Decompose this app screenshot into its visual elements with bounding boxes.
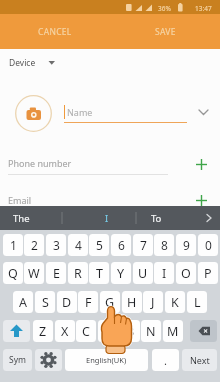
button[interactable]: 7 [133,234,153,256]
staticText: 2 [31,237,38,253]
button[interactable]: M [163,320,183,342]
button[interactable]: . [152,349,179,371]
staticText: T [96,265,103,282]
button[interactable]: A [13,291,33,313]
button[interactable] [60,98,212,128]
staticText: Email [8,194,32,206]
button[interactable]: U [133,262,153,284]
button[interactable]: 8 [154,234,174,256]
button[interactable]: D [57,291,77,313]
staticText: S [42,294,49,311]
button[interactable] [195,194,208,207]
staticText: English(UK) [86,355,127,365]
button[interactable]: P [198,262,218,284]
staticText: A [19,294,27,311]
staticText: 4 [75,237,82,253]
button[interactable]: 5 [89,234,109,256]
staticText: Y [117,265,125,282]
button[interactable] [190,320,217,342]
staticText: Name [67,106,93,118]
button[interactable] [0,51,220,75]
staticText: 36% [158,4,171,13]
staticText: 1 [10,237,17,253]
button[interactable] [3,320,30,342]
staticText: Z [39,323,47,340]
button[interactable]: Q [3,262,23,284]
staticText: CANCEL [38,26,72,38]
button[interactable]: V [98,320,118,342]
button[interactable]: B [120,320,140,342]
button[interactable] [0,152,190,178]
staticText: The [13,212,30,225]
staticText: H [127,294,137,311]
staticText: Phone number [8,157,72,169]
button[interactable] [136,206,200,230]
button[interactable]: Z [33,320,53,342]
staticText: Next [190,354,210,366]
button[interactable]: E [46,262,66,284]
button[interactable]: O [176,262,196,284]
staticText: F [85,294,92,311]
staticText: X [61,323,69,340]
button[interactable]: X [55,320,75,342]
button[interactable]: F [78,291,98,313]
staticText: M [167,323,179,340]
button[interactable]: N [141,320,161,342]
staticText: 13:47 [195,4,212,13]
staticText: 9 [183,237,190,253]
button[interactable]: 9 [176,234,196,256]
staticText: W [28,265,40,282]
button[interactable]: Next [182,349,217,371]
button[interactable]: R [68,262,88,284]
staticText: 8 [161,237,168,253]
button[interactable] [35,349,62,371]
button[interactable]: 4 [68,234,88,256]
staticText: Q [8,265,18,282]
staticText: L [194,294,201,311]
staticText: O [181,265,191,282]
button[interactable]: CANCEL [0,14,110,49]
staticText: SAVE [155,26,176,38]
button[interactable] [15,95,52,132]
button[interactable]: H [122,291,142,313]
button[interactable]: Y [111,262,131,284]
button[interactable] [195,158,208,171]
staticText: Device [9,57,36,69]
button[interactable] [62,206,136,230]
button[interactable]: 3 [46,234,66,256]
button[interactable]: G [100,291,120,313]
button[interactable] [0,206,62,230]
button[interactable]: 6 [111,234,131,256]
staticText: I [105,212,109,225]
button[interactable]: English(UK) [65,349,148,371]
button[interactable]: SAVE [110,14,220,49]
button[interactable]: J [143,291,163,313]
staticText: 3 [53,237,60,253]
staticText: C [82,323,90,340]
button[interactable] [0,188,190,206]
button[interactable]: 1 [3,234,23,256]
button[interactable]: W [24,262,44,284]
staticText: J [151,294,155,311]
staticText: 0 [205,237,212,253]
staticText: E [53,265,60,282]
staticText: 6 [118,237,125,253]
button[interactable]: C [76,320,96,342]
button[interactable]: Sym [3,349,32,371]
button[interactable]: L [187,291,207,313]
staticText: 5 [96,237,103,253]
button[interactable]: I [154,262,174,284]
button[interactable]: T [89,262,109,284]
staticText: D [62,294,72,311]
staticText: K [171,294,179,311]
staticText: Sym [9,354,26,366]
staticText: To [151,212,162,225]
staticText: I [162,265,167,282]
staticText: N [146,323,156,340]
button[interactable]: K [165,291,185,313]
button[interactable]: 2 [24,234,44,256]
button[interactable]: S [35,291,55,313]
staticText: . [164,353,167,368]
button[interactable]: 0 [198,234,218,256]
staticText: G [105,294,115,311]
